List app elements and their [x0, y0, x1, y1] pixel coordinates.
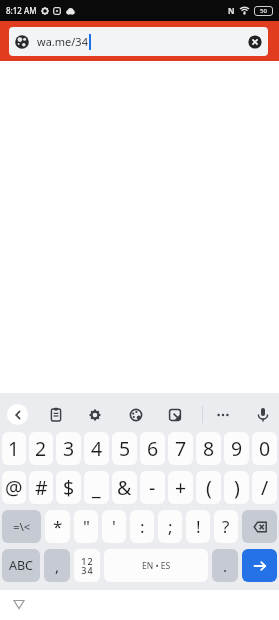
button[interactable]: 8	[196, 432, 221, 465]
staticText: /	[261, 474, 269, 501]
staticText: $	[63, 474, 75, 501]
button[interactable]	[213, 405, 233, 425]
staticText: .	[223, 556, 228, 576]
staticText: 8:12 AM	[6, 5, 37, 16]
staticText: 5	[119, 435, 131, 462]
button[interactable]: ;	[158, 510, 182, 543]
staticText: 12 34	[81, 555, 94, 577]
staticText: '	[112, 515, 116, 538]
staticText: 7	[175, 435, 187, 462]
button[interactable]: wa.me/34	[9, 27, 268, 56]
button[interactable]: 5	[112, 432, 137, 465]
button[interactable]: ,	[44, 549, 70, 582]
staticText: EN • ES	[142, 560, 171, 572]
button[interactable]	[242, 510, 277, 543]
button[interactable]: 3	[56, 432, 81, 465]
staticText: &	[117, 474, 132, 501]
staticText: !	[196, 515, 201, 538]
staticText: 6	[147, 435, 159, 462]
button[interactable]	[248, 35, 262, 49]
staticText: #	[35, 474, 48, 501]
button[interactable]: -	[140, 471, 165, 504]
button[interactable]: &	[112, 471, 137, 504]
button[interactable]	[46, 405, 66, 425]
staticText: )	[234, 474, 240, 501]
button[interactable]: +	[168, 471, 193, 504]
staticText: -	[149, 474, 156, 501]
button[interactable]: 12 34	[74, 549, 100, 582]
button[interactable]: :	[130, 510, 154, 543]
button[interactable]: ABC	[2, 549, 40, 582]
button[interactable]: EN • ES	[104, 549, 208, 582]
button[interactable]: 0	[252, 432, 277, 465]
button[interactable]: 1	[2, 432, 26, 465]
button[interactable]: _	[84, 471, 109, 504]
button[interactable]: 9	[224, 432, 249, 465]
button[interactable]: !	[186, 510, 210, 543]
staticText: :	[140, 515, 145, 538]
button[interactable]: ?	[214, 510, 238, 543]
staticText: 50	[260, 7, 267, 15]
button[interactable]: #	[29, 471, 53, 504]
staticText: *	[53, 515, 63, 538]
button[interactable]	[242, 549, 277, 582]
staticText: _	[92, 474, 101, 501]
staticText: @	[5, 474, 23, 501]
staticText: =\<	[13, 519, 31, 535]
button[interactable]: )	[224, 471, 249, 504]
staticText: (	[206, 474, 212, 501]
button[interactable]: 4	[84, 432, 109, 465]
button[interactable]: /	[252, 471, 277, 504]
staticText: ABC	[9, 557, 34, 574]
staticText: 9	[231, 435, 243, 462]
button[interactable]	[13, 599, 25, 610]
button[interactable]: 6	[140, 432, 165, 465]
staticText: 2	[35, 435, 47, 462]
button[interactable]	[126, 405, 146, 425]
button[interactable]: 7	[168, 432, 193, 465]
staticText: N	[228, 5, 235, 16]
staticText: 3	[63, 435, 75, 462]
staticText: ?	[222, 515, 230, 538]
staticText: wa.me/34	[37, 34, 88, 49]
button[interactable]	[253, 405, 273, 425]
button[interactable]: 2	[29, 432, 53, 465]
button[interactable]: *	[45, 510, 70, 543]
staticText: 4	[91, 435, 103, 462]
button[interactable]: "	[74, 510, 98, 543]
staticText: 8	[203, 435, 215, 462]
staticText: 1	[8, 435, 20, 462]
staticText: "	[83, 515, 90, 538]
button[interactable]	[85, 405, 105, 425]
button[interactable]: (	[196, 471, 221, 504]
staticText: ;	[168, 515, 173, 538]
button[interactable]: .	[212, 549, 238, 582]
button[interactable]: $	[56, 471, 81, 504]
button[interactable]: @	[2, 471, 26, 504]
staticText: 0	[259, 435, 271, 462]
staticText: +	[175, 474, 187, 501]
button[interactable]	[165, 405, 185, 425]
staticText: ,	[55, 556, 60, 576]
button[interactable]	[7, 404, 28, 425]
button[interactable]: =\<	[2, 510, 41, 543]
button[interactable]: '	[102, 510, 126, 543]
